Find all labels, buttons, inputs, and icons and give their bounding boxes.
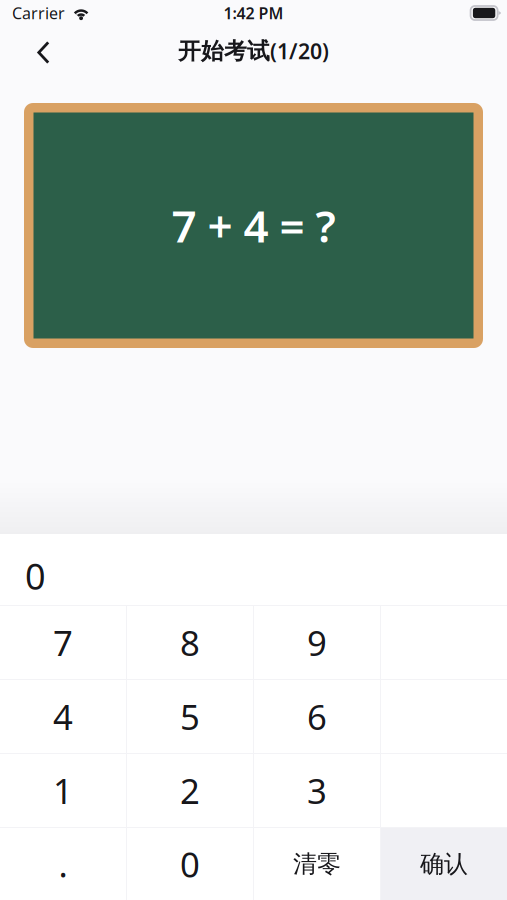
staticText: 确认 — [420, 849, 468, 879]
staticText: 5 — [180, 693, 200, 739]
button[interactable]: 0 — [127, 828, 253, 900]
button[interactable]: 确认 — [381, 828, 507, 900]
button[interactable]: 4 — [0, 680, 126, 753]
staticText: 3 — [307, 767, 327, 813]
button[interactable]: 清零 — [254, 828, 380, 900]
button[interactable]: 6 — [254, 680, 380, 753]
button[interactable]: 2 — [127, 754, 253, 827]
staticText: 0 — [25, 552, 46, 600]
button[interactable]: 3 — [254, 754, 380, 827]
staticText: 7 + 4 = ? — [171, 196, 335, 255]
staticText: 8 — [180, 619, 200, 665]
button[interactable]: . — [0, 828, 126, 900]
button[interactable]: 1 — [0, 754, 126, 827]
button[interactable]: Back — [20, 26, 66, 76]
button[interactable]: 5 — [127, 680, 253, 753]
staticText: 6 — [307, 693, 327, 739]
staticText: 开始考试(1/20) — [178, 37, 329, 65]
button[interactable]: 7 — [0, 606, 126, 679]
button[interactable]: 8 — [127, 606, 253, 679]
button[interactable]: 9 — [254, 606, 380, 679]
staticText: 9 — [307, 619, 327, 665]
staticText: 7 — [53, 619, 73, 665]
staticText: 1 — [53, 767, 73, 813]
staticText: 清零 — [293, 849, 341, 879]
staticText: 1:42 PM — [223, 2, 283, 24]
staticText: 2 — [180, 767, 200, 813]
staticText: . — [58, 841, 67, 887]
staticText: 0 — [180, 841, 200, 887]
staticText: Carrier — [12, 2, 65, 24]
staticText: 4 — [53, 693, 73, 739]
